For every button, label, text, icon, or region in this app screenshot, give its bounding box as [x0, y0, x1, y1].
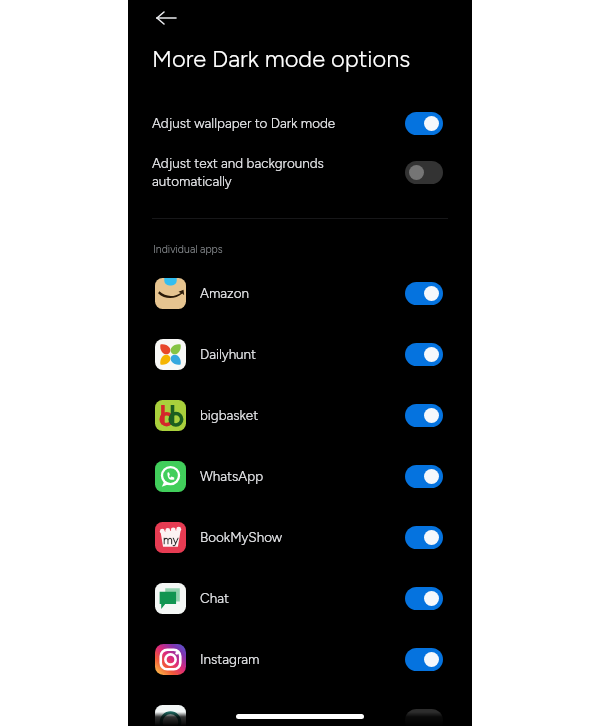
- button[interactable]: Adjust wallpaper to Dark mode, on: [405, 112, 443, 135]
- staticText: Individual apps: [153, 243, 223, 256]
- staticText: Adjust text and backgrounds automaticall…: [152, 155, 324, 190]
- button[interactable]: Instagram: [128, 629, 472, 689]
- button[interactable]: bigbasket: [128, 385, 472, 445]
- staticText: Chat: [200, 590, 229, 606]
- button[interactable]: Dark mode for Dailyhunt: [405, 343, 443, 366]
- button[interactable]: Dailyhunt: [128, 324, 472, 384]
- staticText: Dailyhunt: [200, 346, 257, 362]
- staticText: my: [163, 533, 179, 547]
- staticText: BookMyShow: [200, 529, 283, 545]
- staticText: Amazon: [200, 285, 250, 301]
- button[interactable]: Chat: [128, 568, 472, 628]
- staticText: Instagram: [200, 651, 260, 667]
- button[interactable]: Dark mode for bigbasket: [405, 404, 443, 427]
- button[interactable]: WhatsApp: [128, 446, 472, 506]
- button[interactable]: Adjust text and backgrounds automaticall…: [128, 150, 472, 194]
- button[interactable]: Dark mode for Chat: [405, 587, 443, 610]
- button[interactable]: Adjust wallpaper to Dark mode: [128, 103, 472, 143]
- button[interactable]: Dark mode for Instagram: [405, 648, 443, 671]
- staticText: More Dark mode options: [152, 44, 411, 72]
- button[interactable]: Dark mode for BookMyShow: [405, 526, 443, 549]
- button[interactable]: Dark mode for Amazon: [405, 282, 443, 305]
- button[interactable]: my: [128, 507, 472, 567]
- button[interactable]: Dark mode for WhatsApp: [405, 465, 443, 488]
- button[interactable]: Adjust text and backgrounds automaticall…: [405, 161, 443, 184]
- staticText: WhatsApp: [200, 468, 264, 484]
- staticText: bigbasket: [200, 407, 259, 423]
- button[interactable]: Back: [145, 0, 186, 38]
- button[interactable]: Amazon: [128, 263, 472, 323]
- staticText: Adjust wallpaper to Dark mode: [152, 115, 336, 131]
